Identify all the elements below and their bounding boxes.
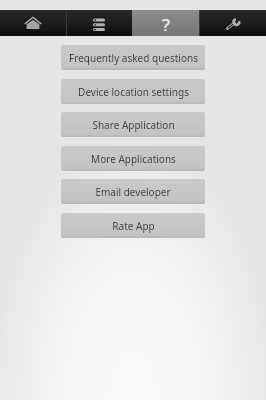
staticText: More Applications — [91, 152, 176, 166]
staticText: ? — [162, 13, 171, 31]
button[interactable]: More Applications — [61, 146, 205, 171]
staticText: Share Application — [92, 118, 175, 132]
staticText: Device location settings — [78, 85, 189, 99]
button[interactable]: Device location settings — [61, 79, 205, 104]
button[interactable]: Rate App — [61, 213, 205, 238]
button[interactable]: Home — [0, 10, 66, 36]
staticText: Frequently asked questions — [69, 51, 198, 65]
button[interactable]: Downloads — [66, 10, 132, 36]
button[interactable]: Settings — [199, 10, 266, 36]
button[interactable]: Help — [132, 10, 199, 36]
staticText: Rate App — [112, 219, 155, 233]
staticText: Email developer — [95, 185, 171, 199]
button[interactable]: Share Application — [61, 112, 205, 137]
button[interactable]: Email developer — [61, 179, 205, 204]
button[interactable]: Frequently asked questions — [61, 45, 205, 70]
